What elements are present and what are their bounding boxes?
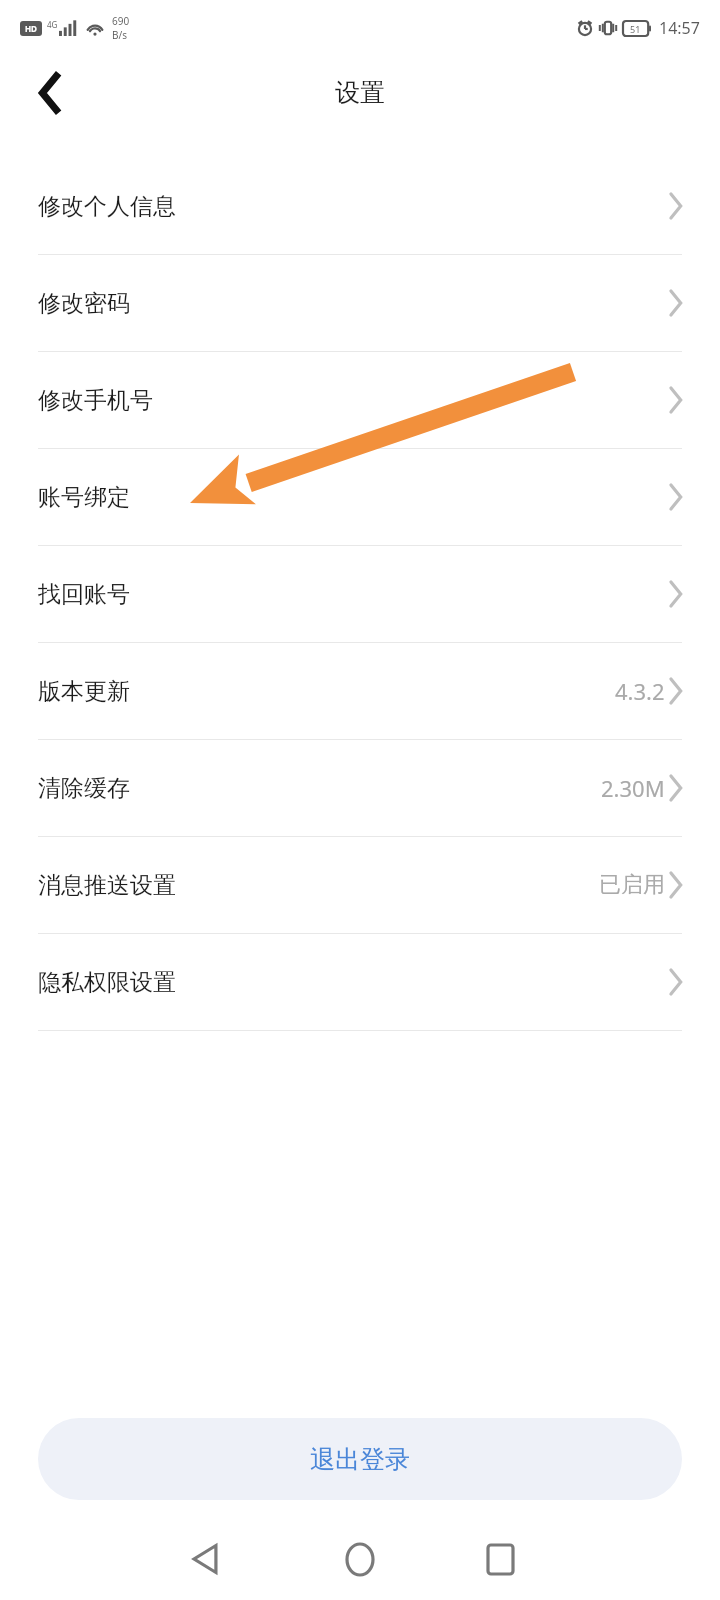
staticText: 690 xyxy=(112,14,130,28)
staticText: 找回账号 xyxy=(38,580,130,609)
staticText: 设置 xyxy=(335,77,385,108)
staticText: 清除缓存 xyxy=(38,774,130,803)
button[interactable]: 版本更新 xyxy=(0,643,720,739)
button[interactable]: Back xyxy=(170,1524,240,1594)
button[interactable]: 消息推送设置 xyxy=(0,837,720,933)
button[interactable]: 隐私权限设置 xyxy=(0,934,720,1030)
staticText: 隐私权限设置 xyxy=(38,968,176,997)
button[interactable]: Home xyxy=(325,1524,395,1594)
button[interactable]: 修改个人信息 xyxy=(0,158,720,254)
staticText: 4G xyxy=(47,19,58,30)
button[interactable]: 修改手机号 xyxy=(0,352,720,448)
staticText: 修改个人信息 xyxy=(38,192,176,221)
staticText: B/s xyxy=(112,28,128,42)
staticText: 已启用 xyxy=(599,871,665,899)
staticText: 2.30M xyxy=(601,773,665,803)
staticText: HD xyxy=(25,23,37,34)
button[interactable]: 清除缓存 xyxy=(0,740,720,836)
button[interactable]: 退出登录 xyxy=(38,1418,682,1500)
staticText: 14:57 xyxy=(659,17,700,39)
staticText: 退出登录 xyxy=(310,1444,410,1475)
button[interactable]: 账号绑定 xyxy=(0,449,720,545)
button[interactable]: Recents xyxy=(465,1524,535,1594)
staticText: 51 xyxy=(630,23,641,35)
button[interactable]: 找回账号 xyxy=(0,546,720,642)
staticText: 修改手机号 xyxy=(38,386,153,415)
staticText: 账号绑定 xyxy=(38,483,130,512)
staticText: 版本更新 xyxy=(38,677,130,706)
staticText: 4.3.2 xyxy=(615,676,665,706)
staticText: 消息推送设置 xyxy=(38,871,176,900)
staticText: 修改密码 xyxy=(38,289,130,318)
button[interactable]: Back xyxy=(22,65,78,121)
button[interactable]: 修改密码 xyxy=(0,255,720,351)
